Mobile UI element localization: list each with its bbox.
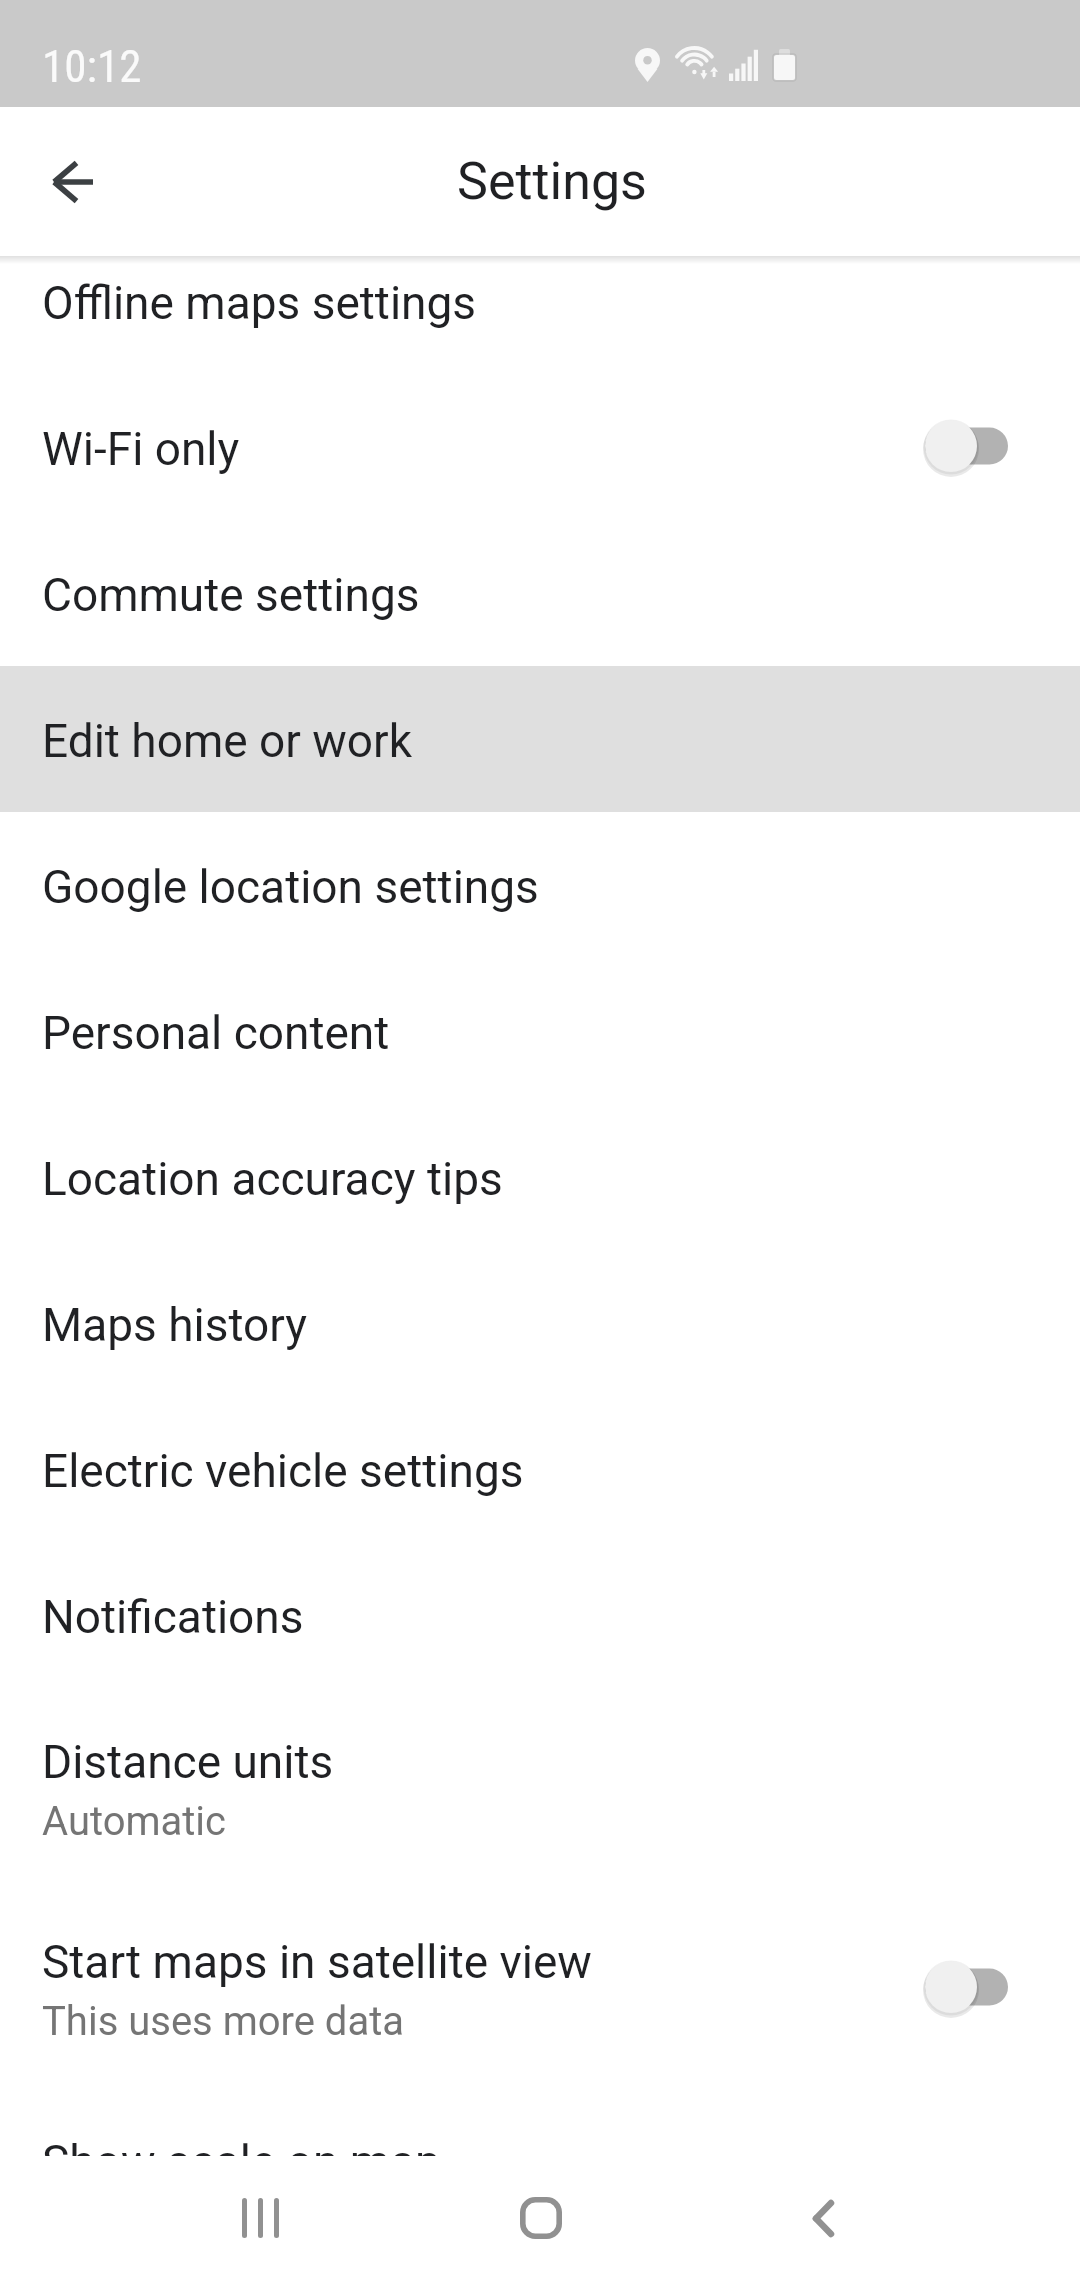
staticText: 10:12 [42,40,142,93]
button[interactable]: Toggle [888,404,1008,494]
staticText: Electric vehicle settings [42,1444,524,1498]
button[interactable]: Back [24,134,120,230]
button[interactable]: Offline maps settings [0,256,1080,376]
button[interactable]: Back [763,2156,883,2280]
button[interactable]: Recent apps [200,2156,320,2280]
staticText: Settings [457,151,647,212]
staticText: Personal content [42,1006,390,1060]
button[interactable]: Personal content [0,960,1080,1106]
staticText: Automatic [42,1798,227,1845]
button[interactable]: Wi-Fi only [0,376,1080,522]
staticText: Maps history [42,1298,308,1352]
staticText: Commute settings [42,568,420,622]
staticText: Offline maps settings [42,276,477,330]
staticText: Google location settings [42,860,539,914]
button[interactable]: Location accuracy tips [0,1106,1080,1252]
staticText: This uses more data [42,1998,405,2045]
button[interactable]: Notifications [0,1544,1080,1690]
staticText: Wi-Fi only [42,422,240,476]
button[interactable]: Electric vehicle settings [0,1398,1080,1544]
button[interactable]: Commute settings [0,522,1080,668]
staticText: Notifications [42,1590,304,1644]
button[interactable]: Toggle [888,1945,1008,2035]
button[interactable]: Edit home or work [0,668,1080,814]
staticText: Show scale on map [42,2135,441,2156]
button[interactable]: Home [481,2156,601,2280]
staticText: Edit home or work [42,714,412,768]
button[interactable]: Distance units [0,1690,1080,1890]
button[interactable]: Google location settings [0,814,1080,960]
staticText: Start maps in satellite view [42,1935,592,1989]
button[interactable]: Show scale on map [0,2090,1080,2156]
staticText: Location accuracy tips [42,1152,503,1206]
button[interactable]: Start maps in satellite view [0,1890,1080,2090]
staticText: Distance units [42,1735,334,1789]
button[interactable]: Maps history [0,1252,1080,1398]
